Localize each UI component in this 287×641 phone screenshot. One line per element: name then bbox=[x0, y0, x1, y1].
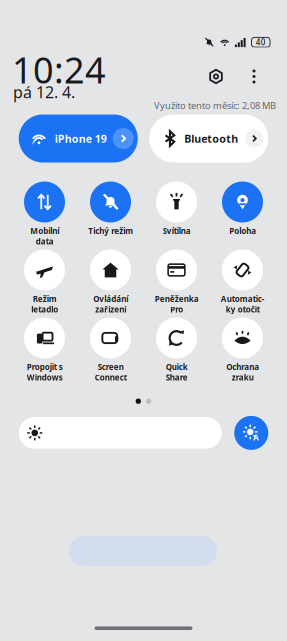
staticText: Tichý režim bbox=[88, 225, 133, 236]
staticText: Využito tento měsíc: 2,08 MB bbox=[154, 99, 276, 112]
button[interactable]: Poloha bbox=[209, 181, 275, 245]
staticText: Ovládání zařízení bbox=[93, 293, 128, 315]
button[interactable]: Screen Connect bbox=[77, 317, 143, 381]
staticText: 5G bbox=[39, 247, 50, 257]
staticText: Pro otevřete bbox=[159, 304, 193, 325]
staticText: iPhone 19 bbox=[55, 131, 107, 146]
button[interactable]: Peněženka bbox=[143, 249, 209, 313]
staticText: Automaticky otočit bbox=[220, 293, 264, 315]
button[interactable]: Automaticky otočit bbox=[209, 249, 275, 313]
staticText: Propojit s Windows bbox=[26, 361, 62, 383]
button[interactable]: iPhone 19 bbox=[19, 114, 138, 162]
staticText: 10:24 bbox=[12, 46, 106, 93]
button[interactable]: Settings bbox=[206, 66, 226, 86]
button[interactable]: Svítilna bbox=[143, 181, 209, 245]
staticText: Screen Connect bbox=[94, 361, 126, 383]
button[interactable]: Propojit s Windows bbox=[11, 317, 77, 381]
staticText: pá 12. 4. bbox=[13, 81, 75, 103]
button[interactable]: Mobilní data bbox=[11, 181, 77, 245]
staticText: Ochrana zraku bbox=[226, 361, 259, 383]
staticText: Svítilna bbox=[162, 225, 190, 236]
staticText: 40 bbox=[256, 37, 266, 47]
staticText: Poloha bbox=[229, 225, 256, 236]
staticText: Bluetooth bbox=[184, 131, 238, 146]
staticText: A bbox=[253, 432, 259, 443]
staticText: Režim letadlo bbox=[31, 293, 58, 315]
button[interactable]: Ovládání zařízení bbox=[77, 249, 143, 313]
button[interactable]: Bluetooth bbox=[149, 114, 268, 162]
button[interactable]: Automatic brightness bbox=[234, 416, 268, 450]
staticText: Quick Share bbox=[165, 361, 187, 383]
staticText: Mobilní data bbox=[30, 225, 59, 247]
button[interactable]: Ochrana zraku bbox=[209, 317, 275, 381]
button[interactable]: Režim letadlo bbox=[11, 249, 77, 313]
staticText: Peněženka bbox=[154, 293, 198, 304]
button[interactable]: Tichý režim bbox=[77, 181, 143, 245]
button[interactable]: Quick Share bbox=[143, 317, 209, 381]
button[interactable]: More options bbox=[246, 66, 262, 86]
